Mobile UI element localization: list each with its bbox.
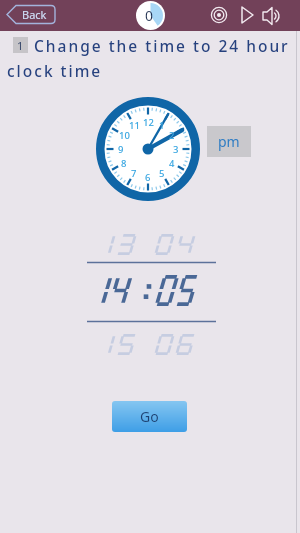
staticText: 12: [143, 116, 154, 129]
staticText: 10: [119, 129, 130, 142]
staticText: 6: [145, 171, 151, 184]
staticText: 3: [173, 143, 179, 156]
staticText: Change the time to 24 hour: [34, 35, 290, 56]
button[interactable]: pm: [207, 126, 251, 157]
button[interactable]: Back: [6, 4, 56, 25]
staticText: 1: [159, 119, 165, 132]
staticText: 2: [169, 129, 175, 142]
staticText: 9: [118, 143, 124, 156]
button[interactable]: Go: [112, 401, 187, 432]
staticText: 11: [129, 119, 140, 132]
button[interactable]: [208, 4, 230, 26]
staticText: 8: [121, 157, 127, 170]
staticText: 1: [17, 38, 24, 53]
button[interactable]: [236, 4, 258, 26]
staticText: 4: [169, 157, 175, 170]
staticText: 0: [145, 6, 154, 25]
staticText: Go: [140, 407, 159, 426]
staticText: 5: [159, 167, 165, 180]
staticText: 7: [131, 167, 137, 180]
staticText: pm: [218, 132, 240, 151]
button[interactable]: [261, 4, 285, 28]
staticText: Back: [22, 7, 47, 22]
staticText: clock time: [7, 60, 103, 81]
